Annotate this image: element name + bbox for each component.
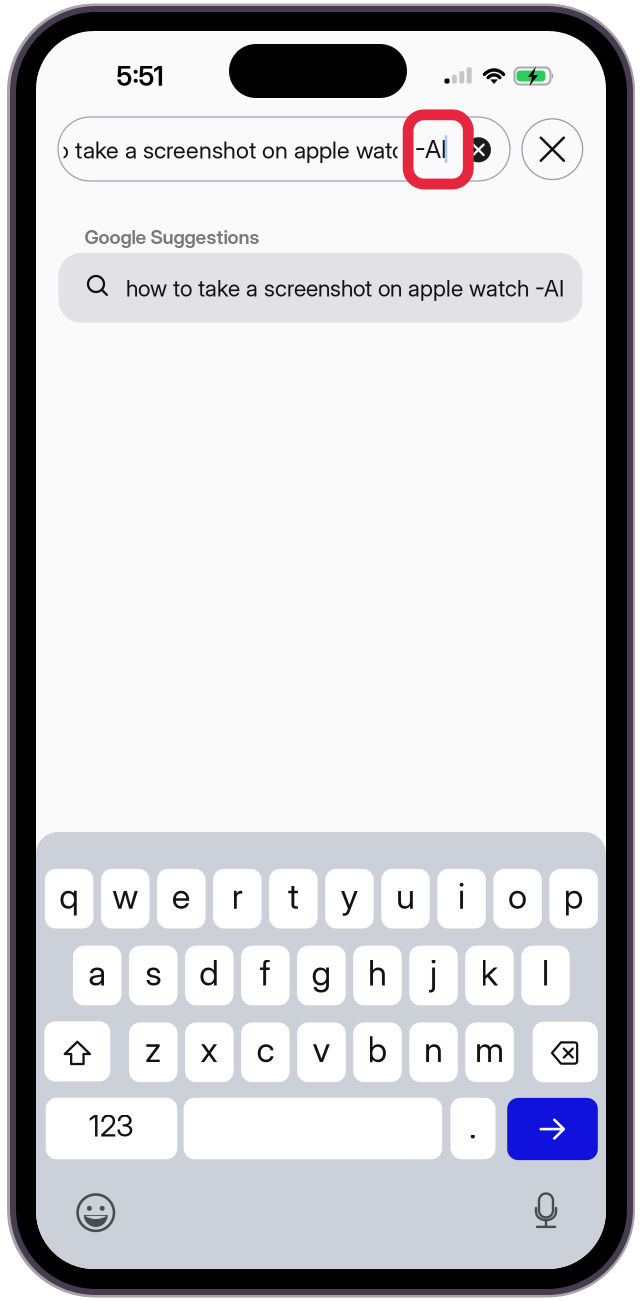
button[interactable]: r <box>213 869 262 929</box>
staticText: i <box>458 875 465 917</box>
staticText: r <box>232 875 243 917</box>
button[interactable]: Clear text <box>464 136 492 164</box>
button[interactable]: e <box>157 869 206 929</box>
button[interactable]: x <box>185 1022 234 1082</box>
staticText: g <box>311 952 331 994</box>
staticText: j <box>430 952 437 994</box>
button[interactable]: b <box>353 1022 402 1082</box>
staticText: b <box>367 1029 387 1071</box>
staticText: s <box>145 952 161 994</box>
staticText: o take a screenshot on apple watc <box>56 136 404 164</box>
staticText: -AI <box>415 134 447 164</box>
staticText: x <box>200 1029 218 1071</box>
button[interactable]: p <box>549 869 598 929</box>
button[interactable]: m <box>465 1022 514 1082</box>
button[interactable]: t <box>269 869 318 929</box>
button[interactable]: q <box>45 869 93 929</box>
staticText: p <box>564 875 584 917</box>
staticText: y <box>340 875 358 917</box>
staticText: e <box>172 875 191 917</box>
button[interactable]: a <box>73 946 121 1005</box>
button[interactable]: l <box>521 946 570 1005</box>
button[interactable]: i <box>437 869 486 929</box>
button[interactable]: f <box>241 946 290 1005</box>
staticText: 5:51 <box>116 60 163 92</box>
button[interactable]: 123 <box>46 1098 177 1159</box>
staticText: c <box>256 1029 274 1071</box>
button[interactable]: v <box>297 1022 346 1082</box>
button[interactable]: Shift <box>44 1021 110 1081</box>
staticText: k <box>480 952 498 994</box>
button[interactable]: g <box>297 946 346 1005</box>
button[interactable]: c <box>241 1022 290 1082</box>
staticText: h <box>368 952 387 994</box>
staticText: Google Suggestions <box>84 225 259 249</box>
staticText: z <box>145 1029 162 1071</box>
button[interactable]: n <box>409 1022 458 1082</box>
staticText: a <box>88 952 106 994</box>
staticText: n <box>424 1029 443 1071</box>
button[interactable] <box>184 1098 442 1159</box>
staticText: o <box>508 875 527 917</box>
button[interactable]: s <box>129 946 177 1005</box>
staticText: l <box>542 952 549 994</box>
button[interactable]: . <box>450 1098 495 1159</box>
button[interactable]: k <box>465 946 514 1005</box>
staticText: how to take a screenshot on apple watch … <box>126 275 564 302</box>
button[interactable]: y <box>325 869 374 929</box>
button[interactable]: how to take a screenshot on apple watch … <box>58 253 582 323</box>
staticText: 123 <box>89 1108 134 1144</box>
button[interactable]: z <box>129 1022 178 1082</box>
staticText: w <box>112 875 138 917</box>
button[interactable]: h <box>353 946 402 1005</box>
staticText: u <box>396 875 415 917</box>
staticText: . <box>469 1105 477 1147</box>
staticText: v <box>312 1029 330 1071</box>
staticText: m <box>475 1029 504 1071</box>
button[interactable]: Emoji keyboard <box>72 1189 120 1237</box>
button[interactable]: u <box>381 869 430 929</box>
staticText: f <box>260 952 271 994</box>
button[interactable]: o take a screenshot on apple watc <box>58 117 510 181</box>
button[interactable]: j <box>409 946 458 1005</box>
button[interactable]: Dictation <box>524 1188 568 1236</box>
button[interactable]: o <box>493 869 542 929</box>
button[interactable]: Close search <box>520 117 584 181</box>
button[interactable]: Delete <box>533 1022 598 1082</box>
staticText: q <box>59 875 79 917</box>
staticText: t <box>288 875 299 917</box>
button[interactable]: d <box>185 946 234 1005</box>
button[interactable]: Search <box>507 1098 598 1160</box>
button[interactable]: w <box>101 869 149 929</box>
staticText: d <box>199 952 219 994</box>
